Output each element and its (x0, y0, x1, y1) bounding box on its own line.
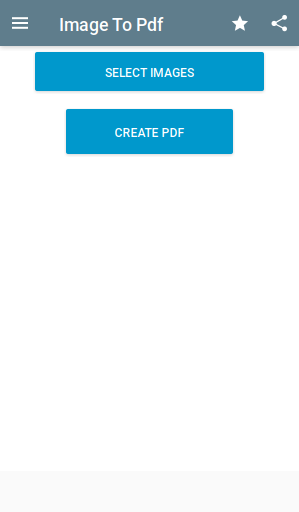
button[interactable]: CREATE PDF (66, 109, 233, 154)
button[interactable]: Share (259, 0, 299, 46)
staticText: Image To Pdf (59, 14, 163, 35)
button[interactable]: Favorite (220, 0, 260, 46)
staticText: SELECT IMAGES (105, 66, 194, 80)
staticText: CREATE PDF (114, 126, 184, 140)
button[interactable]: Open navigation menu (0, 0, 40, 46)
button[interactable]: SELECT IMAGES (35, 52, 264, 91)
